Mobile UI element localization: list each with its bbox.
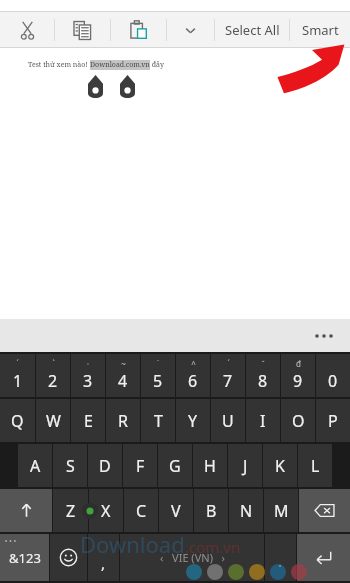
staticText: L [311,455,320,477]
staticText: ˙ [157,358,159,369]
button[interactable]: C [124,489,158,532]
button[interactable]: Y [176,399,210,442]
button[interactable]: . [265,534,296,581]
staticText: D [99,455,111,477]
staticText: Y [188,410,198,432]
other: Selection handle [88,75,103,98]
staticText: ˘ [261,358,265,369]
button[interactable]: S [53,444,87,487]
button[interactable]: X [89,489,123,532]
button[interactable]: D [88,444,122,487]
button[interactable]: Z [53,489,88,532]
button[interactable]: Smart [290,12,350,48]
button[interactable]: B [194,489,228,532]
button[interactable]: ˒ [71,354,105,397]
staticText: ´ [227,358,230,369]
staticText: ´ [16,358,19,369]
button[interactable]: P [316,399,350,442]
staticText: U [222,410,234,432]
button[interactable]: Shift [0,489,52,532]
button[interactable]: R [106,399,140,442]
button[interactable]: F [123,444,157,487]
staticText: 4 [118,370,128,392]
staticText: ‹ VIE (VN) › [160,550,225,565]
staticText: Test thử xem nào! [28,60,90,70]
staticText: ~ [121,358,126,369]
staticText: ˒ [87,358,89,369]
button[interactable]: I [246,399,280,442]
button[interactable]: ^ [176,354,210,397]
staticText: I [260,410,266,432]
button[interactable]: ˘ [246,354,280,397]
staticText: H [204,455,216,477]
staticText: Smart [302,21,339,39]
button[interactable]: O [281,399,315,442]
button[interactable]: V [159,489,193,532]
button[interactable]: Cut [0,12,54,48]
button[interactable]: Emoji [50,534,87,581]
button[interactable]: G [158,444,192,487]
button[interactable]: More options [167,12,214,48]
staticText: P [328,410,338,432]
staticText: 9 [293,370,303,392]
button[interactable]: ‹ VIE (VN) › [120,534,264,581]
staticText: B [206,500,217,522]
button[interactable]: T [141,399,175,442]
staticText: S [66,455,75,477]
button[interactable]: N [229,489,263,532]
button[interactable]: Backspace [299,489,350,532]
staticText: F [136,455,145,477]
staticText: 1 [13,370,23,392]
button[interactable]: Copy [55,12,110,48]
staticText: C [136,500,147,522]
staticText: 0 [328,370,338,392]
staticText: đ [296,358,301,369]
button[interactable]: Paste [111,12,166,48]
button[interactable]: Select All [215,12,289,48]
staticText: ` [52,358,55,369]
staticText: Select All [225,21,280,39]
staticText: . [278,551,283,571]
staticText: Z [66,500,76,522]
button[interactable]: ` [36,354,70,397]
button[interactable]: E [71,399,105,442]
button[interactable]: ´ [0,354,35,397]
button[interactable]: đ [281,354,315,397]
staticText: 7 [223,370,233,392]
staticText: Q [11,410,24,432]
staticText: G [169,455,181,477]
staticText: .com.vn [185,537,241,557]
button[interactable]: , [88,534,119,581]
button[interactable]: L [298,444,332,487]
button[interactable]: ˙ [141,354,175,397]
button[interactable]: &123 [0,534,49,581]
button[interactable]: K [263,444,297,487]
staticText: đây [150,60,164,70]
button[interactable]: Q [0,399,35,442]
staticText: 6 [188,370,198,392]
button[interactable]: J [228,444,262,487]
button[interactable]: W [36,399,70,442]
staticText: J [243,455,248,477]
button[interactable]: ´ [211,354,245,397]
staticText: V [171,500,181,522]
button[interactable]: ~ [106,354,140,397]
button[interactable]: Enter [297,534,350,581]
staticText: N [240,500,253,522]
button[interactable]: H [193,444,227,487]
staticText: K [275,455,285,477]
button[interactable]: A [18,444,52,487]
staticText: ^ [191,358,196,369]
staticText: T [154,410,163,432]
staticText: 8 [258,370,268,392]
other: Selection handle [120,75,135,98]
staticText: X [101,500,111,522]
button[interactable]: U [211,399,245,442]
staticText: 2 [48,370,58,392]
staticText: , [101,553,106,573]
button[interactable]: 0 [316,354,350,397]
button[interactable]: M [264,489,298,532]
staticText: R [118,410,128,432]
button[interactable]: More keyboard options [308,323,340,349]
staticText: O [292,410,305,432]
